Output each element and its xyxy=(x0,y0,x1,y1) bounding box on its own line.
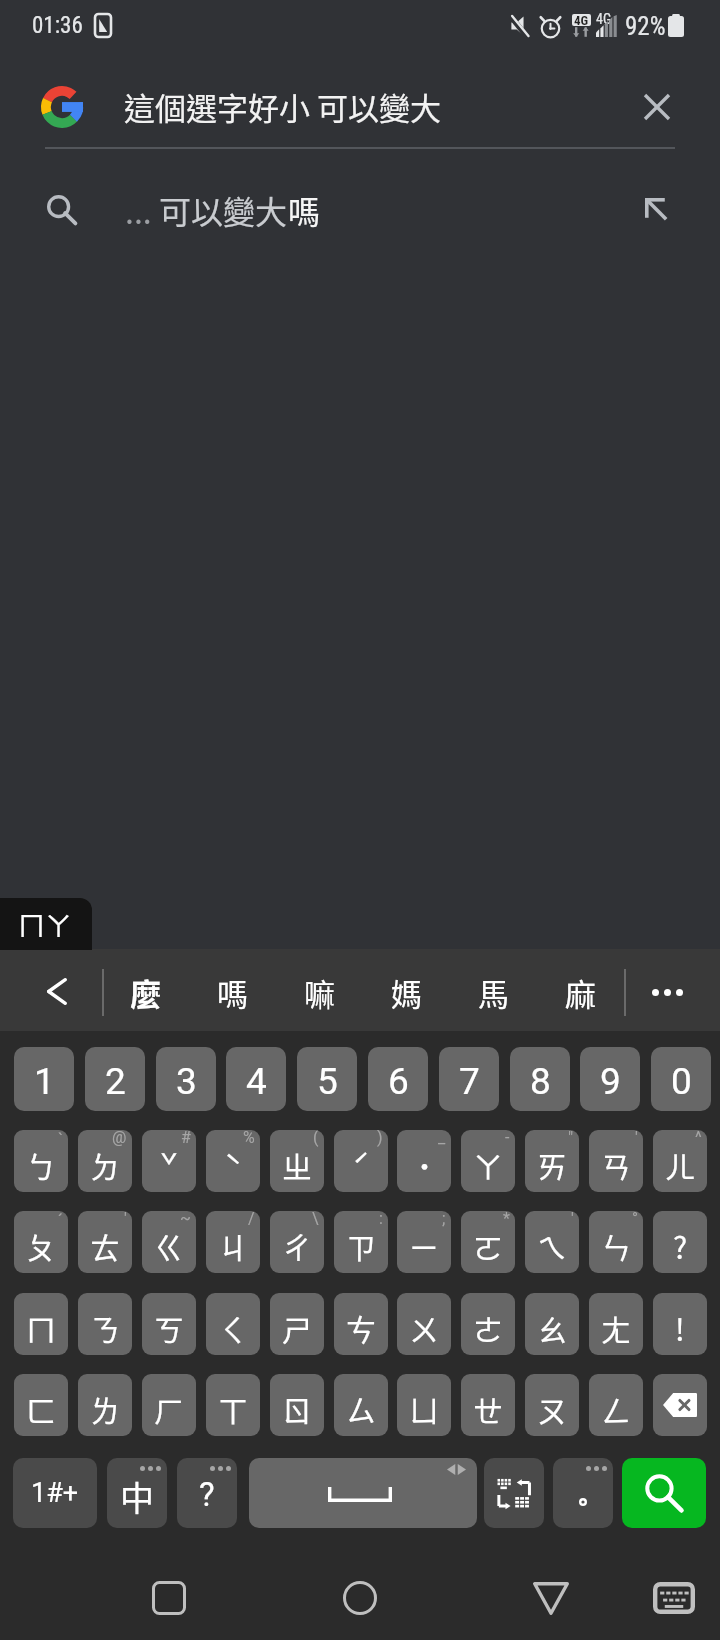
button[interactable]: ㄦ xyxy=(653,1130,707,1192)
staticText: 0 xyxy=(671,1060,692,1103)
button[interactable]: ㄡ xyxy=(525,1374,579,1436)
button[interactable]: ㄈ xyxy=(14,1374,68,1436)
button[interactable]: ? xyxy=(177,1458,237,1528)
staticText: @ xyxy=(112,1130,127,1147)
button[interactable] xyxy=(553,1458,613,1528)
staticText: 1 xyxy=(34,1060,55,1103)
staticText: ㄡ xyxy=(537,1387,567,1430)
button[interactable]: ... xyxy=(0,166,720,248)
button[interactable]: 7 xyxy=(439,1047,499,1111)
button[interactable]: ㄇ xyxy=(14,1293,68,1355)
staticText: ㄖ xyxy=(282,1387,312,1430)
staticText: 01:36 xyxy=(32,12,83,39)
button[interactable]: ˙ xyxy=(397,1130,451,1192)
button[interactable]: ㄧ xyxy=(397,1211,451,1273)
button[interactable]: ㄢ xyxy=(589,1130,643,1192)
button[interactable]: 馬 xyxy=(450,949,537,1031)
staticText: _ xyxy=(438,1130,446,1147)
button[interactable]: 0 xyxy=(651,1047,711,1111)
staticText: ㄊ xyxy=(90,1224,120,1267)
button[interactable]: ˊ xyxy=(334,1130,388,1192)
button[interactable]: Recent apps xyxy=(127,1556,211,1640)
button[interactable]: ㄖ xyxy=(270,1374,324,1436)
button[interactable]: ㄅ xyxy=(14,1130,68,1192)
staticText: 92% xyxy=(625,12,666,41)
button[interactable]: ㄆ xyxy=(14,1211,68,1273)
button[interactable]: Search xyxy=(622,1458,706,1528)
staticText: 4 xyxy=(246,1060,267,1103)
button[interactable]: 2 xyxy=(85,1047,145,1111)
button[interactable]: 9 xyxy=(580,1047,640,1111)
staticText: ' xyxy=(571,1211,574,1228)
button[interactable]: 麼 xyxy=(102,949,189,1031)
button[interactable]: 1 xyxy=(14,1047,74,1111)
button[interactable]: ㄍ xyxy=(142,1211,196,1273)
button[interactable]: ㄏ xyxy=(142,1374,196,1436)
button[interactable]: ㄣ xyxy=(589,1211,643,1273)
button[interactable]: ㄝ xyxy=(461,1374,515,1436)
staticText: ㄞ xyxy=(537,1143,567,1186)
staticText: ㄒ xyxy=(218,1387,248,1430)
button[interactable]: ㄨ xyxy=(397,1293,451,1355)
staticText: ㄣ xyxy=(601,1224,631,1267)
button[interactable]: 3 xyxy=(156,1047,216,1111)
staticText: ... xyxy=(125,187,159,233)
button[interactable]: Clear search xyxy=(633,83,681,131)
staticText: ㄓ xyxy=(282,1143,312,1186)
button[interactable]: Home xyxy=(318,1556,402,1640)
button[interactable]: 媽 xyxy=(363,949,450,1031)
button[interactable]: ㄌ xyxy=(78,1374,132,1436)
button[interactable]: ㄛ xyxy=(461,1211,515,1273)
staticText: ㄜ xyxy=(473,1306,503,1349)
staticText: ㄇㄚ xyxy=(18,905,72,944)
button[interactable]: 6 xyxy=(368,1047,428,1111)
button[interactable]: Hide keyboard xyxy=(638,1556,710,1640)
staticText: ? xyxy=(199,1475,215,1514)
button[interactable]: Previous suggestions xyxy=(0,949,102,1031)
button[interactable]: 4 xyxy=(226,1047,286,1111)
button[interactable]: ˋ xyxy=(206,1130,260,1192)
button[interactable]: 1#+ xyxy=(13,1458,97,1528)
staticText: - xyxy=(505,1130,510,1147)
button[interactable]: 5 xyxy=(297,1047,357,1111)
button[interactable]: ㄒ xyxy=(206,1374,260,1436)
staticText: ˇ xyxy=(160,1143,178,1186)
button[interactable]: ㄜ xyxy=(461,1293,515,1355)
button[interactable]: 8 xyxy=(510,1047,570,1111)
button[interactable]: ㄠ xyxy=(525,1293,579,1355)
button[interactable]: ˇ xyxy=(142,1130,196,1192)
staticText: ㄝ xyxy=(473,1387,503,1430)
button[interactable]: ㄞ xyxy=(525,1130,579,1192)
button[interactable]: Backspace xyxy=(653,1374,707,1436)
button[interactable]: ! xyxy=(653,1293,707,1355)
button[interactable]: ㄐ xyxy=(206,1211,260,1273)
button[interactable]: Space xyxy=(249,1458,477,1528)
button[interactable]: ㄓ xyxy=(270,1130,324,1192)
button[interactable]: ? xyxy=(653,1211,707,1273)
button[interactable]: 中 xyxy=(107,1458,167,1528)
staticText: ㄟ xyxy=(537,1224,567,1267)
button[interactable]: ㄗ xyxy=(334,1211,388,1273)
button[interactable]: 麻 xyxy=(537,949,624,1031)
button[interactable]: ㄊ xyxy=(78,1211,132,1273)
button[interactable]: ㄥ xyxy=(589,1374,643,1436)
button[interactable]: Back xyxy=(509,1556,593,1640)
button[interactable]: ㄚ xyxy=(461,1130,515,1192)
button[interactable]: 嗎 xyxy=(189,949,276,1031)
staticText: 6 xyxy=(388,1060,409,1103)
button[interactable]: ㄋ xyxy=(78,1293,132,1355)
button[interactable]: ㄑ xyxy=(206,1293,260,1355)
button[interactable]: ㄟ xyxy=(525,1211,579,1273)
button[interactable]: ㄙ xyxy=(334,1374,388,1436)
button[interactable]: ㄎ xyxy=(142,1293,196,1355)
button[interactable]: ㄕ xyxy=(270,1293,324,1355)
button[interactable]: Switch keyboard layout xyxy=(484,1458,544,1528)
button[interactable]: 嘛 xyxy=(276,949,363,1031)
button[interactable]: More suggestions xyxy=(625,949,720,1031)
staticText: 嗎 xyxy=(288,187,321,233)
button[interactable]: ㄤ xyxy=(589,1293,643,1355)
button[interactable]: ㄘ xyxy=(334,1293,388,1355)
button[interactable]: ㄩ xyxy=(397,1374,451,1436)
button[interactable]: ㄔ xyxy=(270,1211,324,1273)
button[interactable]: ㄉ xyxy=(78,1130,132,1192)
